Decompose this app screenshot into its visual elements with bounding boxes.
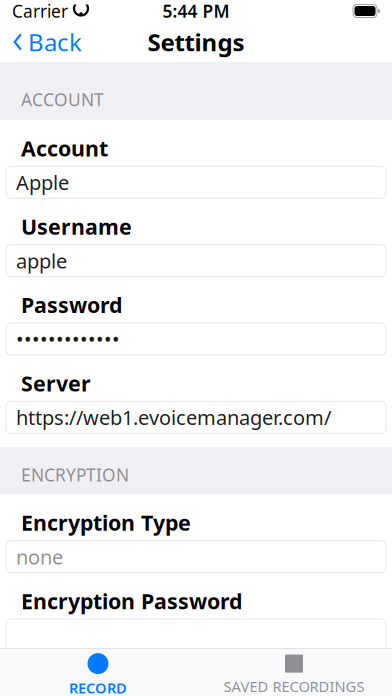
button[interactable]: apple [6,245,386,277]
button[interactable]: none [6,541,386,573]
staticText: Encryption Password [21,587,242,615]
staticText: Username [21,212,132,241]
staticText: Account [21,134,108,162]
staticText: Apple [16,169,69,196]
staticText: Back [28,26,82,58]
staticText: SAVED RECORDINGS [223,677,364,696]
staticText: RECORD [69,678,127,696]
staticText: Encryption Type [21,508,191,537]
staticText: apple [16,247,67,274]
staticText: ••••••••••••• [16,326,120,352]
staticText: ENCRYPTION [21,463,129,486]
button[interactable]: Apple [6,166,386,198]
staticText: https://web1.evoicemanager.com/ [16,404,331,431]
staticText: Carrier [12,0,68,22]
staticText: Server [21,369,91,397]
button[interactable]: ••••••••••••• [6,323,386,355]
staticText: ACCOUNT [21,88,104,111]
staticText: Settings [147,26,244,58]
button[interactable]: RECORD [0,649,196,696]
staticText: 5:44 PM [162,0,229,22]
staticText: none [16,543,63,570]
button[interactable]: Back [0,22,94,62]
staticText: Password [21,291,122,319]
button[interactable]: SAVED RECORDINGS [196,649,392,696]
button[interactable]: https://web1.evoicemanager.com/ [6,401,386,433]
button[interactable] [6,619,386,651]
